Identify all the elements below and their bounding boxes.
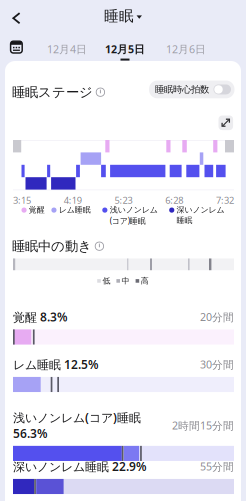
staticText: 睡眠: [104, 7, 134, 25]
staticText: 2時間15分間: [172, 418, 234, 433]
staticText: 深いノンレム睡眠 22.9%: [13, 458, 147, 474]
button[interactable]: 12月6日: [161, 39, 211, 59]
staticText: 12月6日: [166, 42, 206, 56]
staticText: 6:28: [165, 194, 183, 206]
staticText: 睡眠中の動き: [12, 238, 92, 254]
staticText: 20分間: [200, 310, 234, 324]
staticText: 睡眠: [176, 215, 192, 225]
staticText: 7:32: [216, 194, 234, 206]
button[interactable]: 睡眠時心拍数: [149, 80, 234, 98]
staticText: 55分間: [200, 459, 234, 474]
staticText: 高: [141, 276, 149, 286]
button[interactable]: 睡眠: [99, 4, 147, 28]
staticText: 中: [122, 276, 130, 286]
staticText: 12月5日: [105, 42, 145, 56]
staticText: 浅いノンレム(コア)睡眠 56.3%: [13, 409, 141, 441]
staticText: 睡眠ステージ: [12, 84, 93, 100]
button[interactable]: Calendar: [7, 37, 26, 57]
staticText: 3:15: [13, 194, 31, 206]
staticText: レム睡眠 12.5%: [13, 356, 99, 372]
staticText: 浅いノンレム: [110, 205, 158, 215]
button[interactable]: Expand chart: [218, 115, 233, 130]
staticText: 12月4日: [47, 42, 87, 56]
button[interactable]: 12月5日: [100, 39, 150, 61]
staticText: 覚醒: [29, 205, 45, 215]
staticText: レム睡眠: [59, 205, 91, 215]
staticText: 睡眠時心拍数: [155, 84, 209, 95]
button[interactable]: Back: [5, 6, 28, 30]
button[interactable]: 12月4日: [42, 39, 92, 59]
staticText: 深いノンレム: [176, 205, 224, 215]
staticText: 4:19: [64, 194, 82, 206]
staticText: 5:23: [114, 194, 132, 206]
staticText: 30分間: [200, 357, 234, 372]
staticText: 低: [102, 276, 110, 286]
staticText: (コア)睡眠: [110, 215, 146, 226]
staticText: 覚醒 8.3%: [13, 309, 68, 325]
